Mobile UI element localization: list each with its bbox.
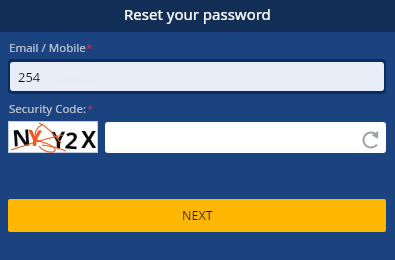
staticText: N xyxy=(11,120,32,152)
staticText: 2 xyxy=(64,123,80,154)
staticText: Security Code: xyxy=(9,101,87,117)
button[interactable]: 254 xyxy=(10,62,384,91)
staticText: Email / Mobile xyxy=(9,40,86,56)
staticText: 254 xyxy=(18,68,41,86)
button[interactable]: Refresh security code xyxy=(105,122,386,153)
staticText: NEXT xyxy=(182,207,213,224)
button[interactable]: Refresh security code xyxy=(356,123,386,153)
staticText: * xyxy=(87,101,94,117)
staticText: Reset your password xyxy=(124,4,271,24)
staticText: Y xyxy=(27,122,43,152)
staticText: Y xyxy=(51,123,66,153)
button[interactable]: NEXT xyxy=(8,199,386,232)
staticText: X xyxy=(81,123,97,153)
staticText: * xyxy=(86,40,93,56)
